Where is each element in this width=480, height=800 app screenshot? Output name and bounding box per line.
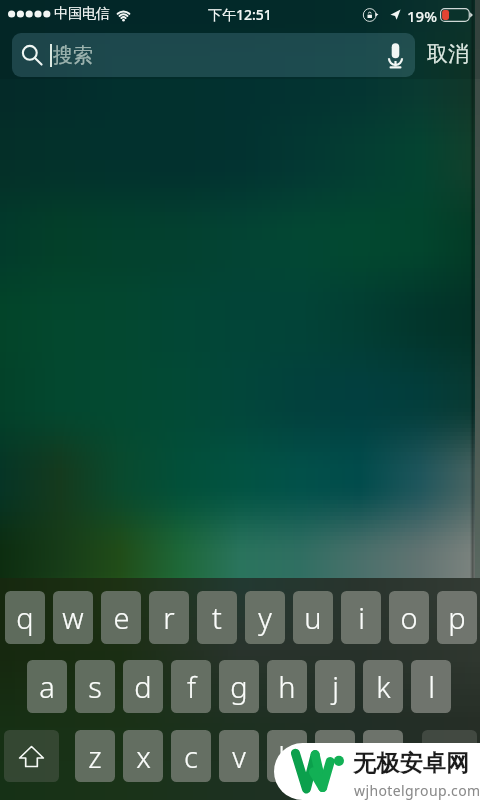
- button[interactable]: i: [341, 591, 381, 644]
- staticText: w: [62, 598, 84, 637]
- button[interactable]: Delete: [422, 730, 477, 782]
- staticText: x: [136, 737, 151, 776]
- staticText: n: [326, 737, 344, 776]
- staticText: o: [400, 598, 418, 637]
- staticText: f: [187, 667, 196, 706]
- staticText: a: [39, 667, 55, 706]
- button[interactable]: a: [27, 660, 67, 713]
- staticText: t: [212, 598, 222, 637]
- staticText: m: [370, 737, 396, 776]
- staticText: 中国电信: [54, 5, 110, 23]
- button[interactable]: b: [267, 730, 307, 782]
- staticText: r: [163, 598, 175, 637]
- button[interactable]: Shift: [4, 730, 59, 782]
- button[interactable]: g: [219, 660, 259, 713]
- staticText: s: [88, 667, 102, 706]
- button[interactable]: r: [149, 591, 189, 644]
- button[interactable]: h: [267, 660, 307, 713]
- button[interactable]: s: [75, 660, 115, 713]
- button[interactable]: z: [75, 730, 115, 782]
- button[interactable]: v: [219, 730, 259, 782]
- button[interactable]: l: [411, 660, 451, 713]
- button[interactable]: p: [437, 591, 477, 644]
- button[interactable]: k: [363, 660, 403, 713]
- button[interactable]: q: [5, 591, 45, 644]
- button[interactable]: Voice search: [376, 36, 414, 74]
- button[interactable]: x: [123, 730, 163, 782]
- button[interactable]: c: [171, 730, 211, 782]
- button[interactable]: w: [53, 591, 93, 644]
- staticText: j: [332, 667, 339, 706]
- button[interactable]: o: [389, 591, 429, 644]
- button[interactable]: 搜索: [12, 33, 415, 77]
- staticText: k: [376, 667, 391, 706]
- staticText: e: [113, 598, 130, 637]
- staticText: 19%: [407, 6, 437, 26]
- button[interactable]: n: [315, 730, 355, 782]
- button[interactable]: t: [197, 591, 237, 644]
- button[interactable]: d: [123, 660, 163, 713]
- staticText: y: [258, 598, 272, 637]
- staticText: d: [134, 667, 152, 706]
- button[interactable]: e: [101, 591, 141, 644]
- button[interactable]: u: [293, 591, 333, 644]
- staticText: 搜索: [53, 43, 93, 68]
- button[interactable]: f: [171, 660, 211, 713]
- staticText: z: [88, 737, 102, 776]
- staticText: h: [278, 667, 296, 706]
- staticText: l: [428, 667, 435, 706]
- staticText: u: [304, 598, 322, 637]
- staticText: v: [232, 737, 246, 776]
- staticText: c: [184, 737, 198, 776]
- button[interactable]: 取消: [419, 28, 477, 79]
- staticText: 下午12:51: [208, 5, 272, 24]
- staticText: b: [278, 737, 296, 776]
- staticText: wjhotelgroup.com: [354, 781, 480, 800]
- staticText: q: [16, 598, 34, 637]
- staticText: 取消: [427, 41, 469, 67]
- staticText: g: [230, 667, 248, 706]
- staticText: i: [358, 598, 365, 637]
- button[interactable]: j: [315, 660, 355, 713]
- staticText: 无极安卓网: [353, 749, 469, 778]
- button[interactable]: m: [363, 730, 403, 782]
- staticText: p: [448, 598, 466, 637]
- button[interactable]: y: [245, 591, 285, 644]
